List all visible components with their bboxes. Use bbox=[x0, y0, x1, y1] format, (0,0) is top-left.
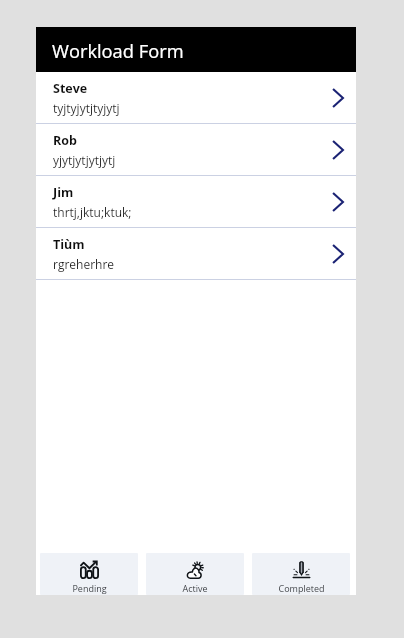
staticText: Steve bbox=[53, 80, 88, 97]
staticText: Workload Form bbox=[52, 38, 184, 63]
other: Open Tiùm bbox=[326, 239, 349, 269]
button[interactable]: Active bbox=[146, 553, 244, 595]
staticText: Completed bbox=[278, 582, 325, 594]
button[interactable]: Tiùm bbox=[36, 228, 356, 279]
staticText: Pending bbox=[72, 582, 107, 594]
staticText: Active bbox=[182, 582, 208, 594]
staticText: thrtj,jktu;ktuk; bbox=[53, 204, 132, 220]
other: Open Jim bbox=[326, 187, 349, 217]
button[interactable]: Rob bbox=[36, 124, 356, 175]
staticText: tyjtyjytjtyjytj bbox=[53, 100, 120, 116]
staticText: Jim bbox=[53, 184, 74, 201]
staticText: yjytjytjytjytj bbox=[53, 152, 116, 168]
staticText: rgreherhre bbox=[53, 256, 115, 272]
other: Open Rob bbox=[326, 135, 349, 165]
other: Open Steve bbox=[326, 83, 349, 113]
button[interactable]: Steve bbox=[36, 72, 356, 123]
button[interactable]: Pending bbox=[40, 553, 138, 595]
button[interactable]: Jim bbox=[36, 176, 356, 227]
staticText: Rob bbox=[53, 132, 77, 149]
staticText: Tiùm bbox=[53, 236, 85, 253]
button[interactable]: Completed bbox=[252, 553, 350, 595]
